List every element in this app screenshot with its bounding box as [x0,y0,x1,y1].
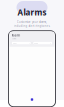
staticText: 00:00 [13,42,17,44]
button[interactable]: 00:00 [33,41,52,45]
staticText: v [29,42,30,44]
staticText: Alarms [17,7,46,18]
staticText: Set a time [11,38,16,40]
button[interactable]: 00:00 [11,41,31,45]
staticText: including alert ringtones. [13,24,50,28]
button[interactable]: Home indicator [31,98,33,101]
staticText: Customize your alarms, [17,20,47,24]
staticText: Alarm [11,34,20,37]
staticText: v [50,42,51,44]
staticText: 00:00 [34,42,38,44]
